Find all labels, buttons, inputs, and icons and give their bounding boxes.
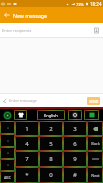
button[interactable]: Hide keyboard [84, 110, 99, 120]
button[interactable]: 2 [39, 121, 63, 136]
staticText: # [73, 171, 77, 179]
button[interactable]: Space [87, 151, 103, 167]
staticText: Next [91, 173, 100, 178]
staticText: Enter message [9, 98, 37, 103]
button[interactable]: Settings [68, 110, 82, 120]
staticText: 2 [49, 125, 53, 133]
button[interactable]: More options [0, 121, 15, 134]
staticText: Back [91, 141, 100, 146]
button[interactable]: Next [87, 167, 103, 183]
staticText: 9 [73, 155, 77, 163]
staticText: 73% [76, 2, 84, 7]
button[interactable]: 9 [63, 151, 87, 167]
staticText: * [25, 171, 29, 179]
staticText: ABC [4, 175, 11, 180]
button[interactable]: Delete [87, 121, 103, 136]
button[interactable]: More options [0, 159, 15, 171]
staticText: 6 [73, 140, 77, 148]
button[interactable]: Attach file [0, 96, 9, 105]
staticText: Enter recipients [2, 28, 32, 33]
button[interactable]: 5 [39, 136, 63, 151]
button[interactable]: Theme [14, 110, 27, 120]
staticText: 8 [49, 155, 53, 163]
button[interactable]: More options [0, 147, 15, 159]
staticText: English [44, 113, 58, 118]
button[interactable]: 4 [15, 136, 39, 151]
staticText: SEND [89, 99, 99, 104]
staticText: 7 [25, 155, 29, 163]
button[interactable]: Back [87, 136, 103, 151]
button[interactable]: * [15, 167, 39, 183]
button[interactable]: 0 [39, 167, 63, 183]
staticText: 0 [49, 171, 53, 179]
staticText: 18:24 [90, 1, 102, 7]
button[interactable]: Voice input [1, 109, 14, 121]
staticText: 3 [73, 125, 77, 133]
button[interactable]: SEND [87, 97, 100, 105]
button[interactable]: Input language: English [37, 110, 65, 120]
button[interactable]: 1 [15, 121, 39, 136]
button[interactable]: # [63, 167, 87, 183]
button[interactable]: 8 [39, 151, 63, 167]
button[interactable]: Add recipient from contacts [90, 24, 102, 36]
button[interactable]: More options [0, 134, 15, 147]
button[interactable]: 6 [63, 136, 87, 151]
staticText: 1 [25, 125, 29, 133]
button[interactable]: Switch to letters [0, 171, 15, 183]
button[interactable]: Navigate up [0, 7, 13, 23]
button[interactable]: 3 [63, 121, 87, 136]
button[interactable]: 7 [15, 151, 39, 167]
staticText: 5 [49, 140, 53, 148]
staticText: New message [13, 12, 47, 19]
staticText: 4 [25, 140, 29, 148]
